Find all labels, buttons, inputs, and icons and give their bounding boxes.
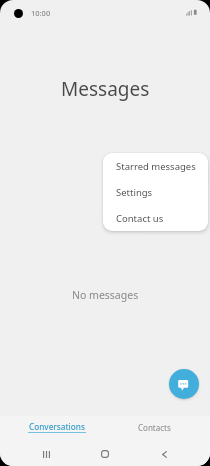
button[interactable]: Back	[152, 442, 177, 466]
staticText: Contacts	[138, 422, 171, 433]
staticText: 10:00	[31, 8, 51, 18]
button[interactable]: Conversations	[4, 416, 109, 442]
button[interactable]: Contacts	[102, 416, 207, 442]
button[interactable]: New conversation	[169, 369, 199, 399]
button[interactable]: Home	[92, 442, 118, 466]
staticText: Starred messages	[116, 160, 196, 173]
staticText: Messages	[61, 76, 150, 102]
staticText: No messages	[72, 288, 139, 302]
staticText: Settings	[116, 186, 153, 199]
button[interactable]: Settings	[103, 179, 208, 205]
staticText: Conversations	[29, 421, 85, 432]
button[interactable]: Contact us	[103, 205, 208, 231]
button[interactable]: Recent apps	[34, 442, 59, 466]
staticText: Contact us	[116, 212, 164, 225]
button[interactable]: Starred messages	[103, 153, 208, 179]
